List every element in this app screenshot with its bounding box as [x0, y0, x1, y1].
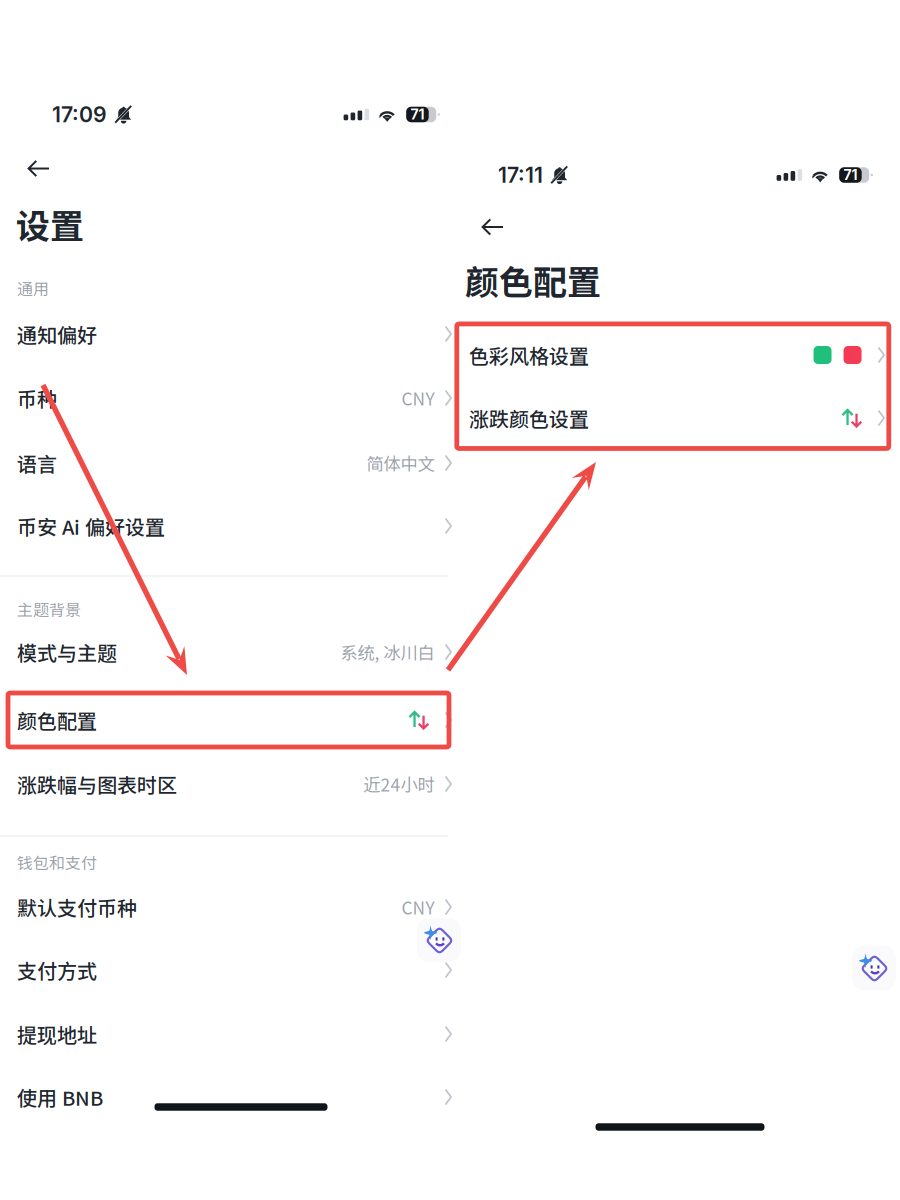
button[interactable]: 提现地址	[0, 1002, 453, 1066]
button[interactable]: AI assistant	[417, 918, 461, 962]
staticText: 71	[410, 106, 424, 123]
staticText: 设置	[16, 199, 84, 249]
staticText: 币安 Ai 偏好设置	[17, 511, 165, 540]
staticText: 近24小时	[363, 771, 434, 797]
staticText: 颜色配置	[17, 705, 97, 734]
staticText: 系统, 冰川白	[340, 639, 434, 665]
button[interactable]: Back	[472, 209, 513, 245]
staticText: CNY	[401, 385, 434, 411]
button[interactable]: 语言	[0, 431, 453, 495]
button[interactable]: 涨跌幅与图表时区	[0, 752, 453, 816]
staticText: 涨跌颜色设置	[469, 403, 589, 432]
button[interactable]: 使用 BNB	[0, 1065, 453, 1129]
staticText: 默认支付币种	[17, 892, 137, 921]
staticText: 币种	[17, 383, 57, 412]
staticText: 71	[843, 166, 857, 183]
button[interactable]: 币种	[0, 366, 453, 430]
button[interactable]: 颜色配置	[0, 688, 453, 752]
staticText: CNY	[401, 894, 434, 920]
staticText: 提现地址	[17, 1019, 97, 1048]
staticText: 色彩风格设置	[469, 340, 589, 369]
button[interactable]: 涨跌颜色设置	[453, 386, 900, 450]
staticText: 支付方式	[17, 955, 97, 984]
staticText: 钱包和支付	[17, 850, 97, 874]
button[interactable]: 通知偏好	[0, 302, 453, 366]
staticText: 通知偏好	[17, 319, 97, 348]
staticText: 主题背景	[17, 597, 81, 621]
button[interactable]: AI assistant	[852, 946, 896, 990]
button[interactable]: 币安 Ai 偏好设置	[0, 494, 453, 558]
button[interactable]: 模式与主题	[0, 620, 453, 684]
button[interactable]: 色彩风格设置	[453, 323, 900, 387]
staticText: 通用	[17, 276, 49, 300]
staticText: 颜色配置	[465, 255, 601, 305]
button[interactable]: 支付方式	[0, 938, 453, 1002]
staticText: 使用 BNB	[17, 1082, 103, 1111]
staticText: 17:11	[498, 162, 543, 188]
staticText: 模式与主题	[17, 637, 117, 666]
staticText: 17:09	[52, 102, 107, 127]
staticText: 简体中文	[366, 450, 434, 476]
staticText: 涨跌幅与图表时区	[17, 769, 177, 798]
button[interactable]: Back	[18, 150, 59, 186]
staticText: 语言	[17, 448, 57, 477]
button[interactable]: 默认支付币种	[0, 875, 453, 939]
